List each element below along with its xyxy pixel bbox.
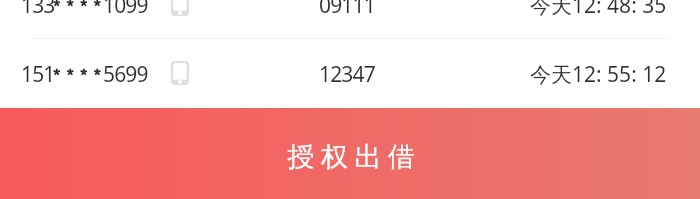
staticText: 5699: [103, 60, 148, 89]
other: masked digits: [50, 0, 104, 9]
other: Mobile device: [171, 61, 189, 85]
button[interactable]: 133: [0, 0, 700, 36]
staticText: 授权出借: [284, 140, 418, 174]
button[interactable]: 授权出借: [0, 108, 700, 199]
staticText: 12347: [319, 60, 375, 89]
staticText: 今天12: 55: 12: [530, 60, 667, 89]
other: masked digits: [50, 66, 104, 78]
staticText: 09111: [319, 0, 375, 20]
button[interactable]: 151: [0, 39, 700, 105]
other: Mobile device: [171, 0, 189, 16]
staticText: 133: [21, 0, 55, 20]
staticText: 1099: [103, 0, 148, 20]
staticText: 151: [21, 60, 55, 89]
staticText: 今天12: 48: 35: [530, 0, 667, 20]
